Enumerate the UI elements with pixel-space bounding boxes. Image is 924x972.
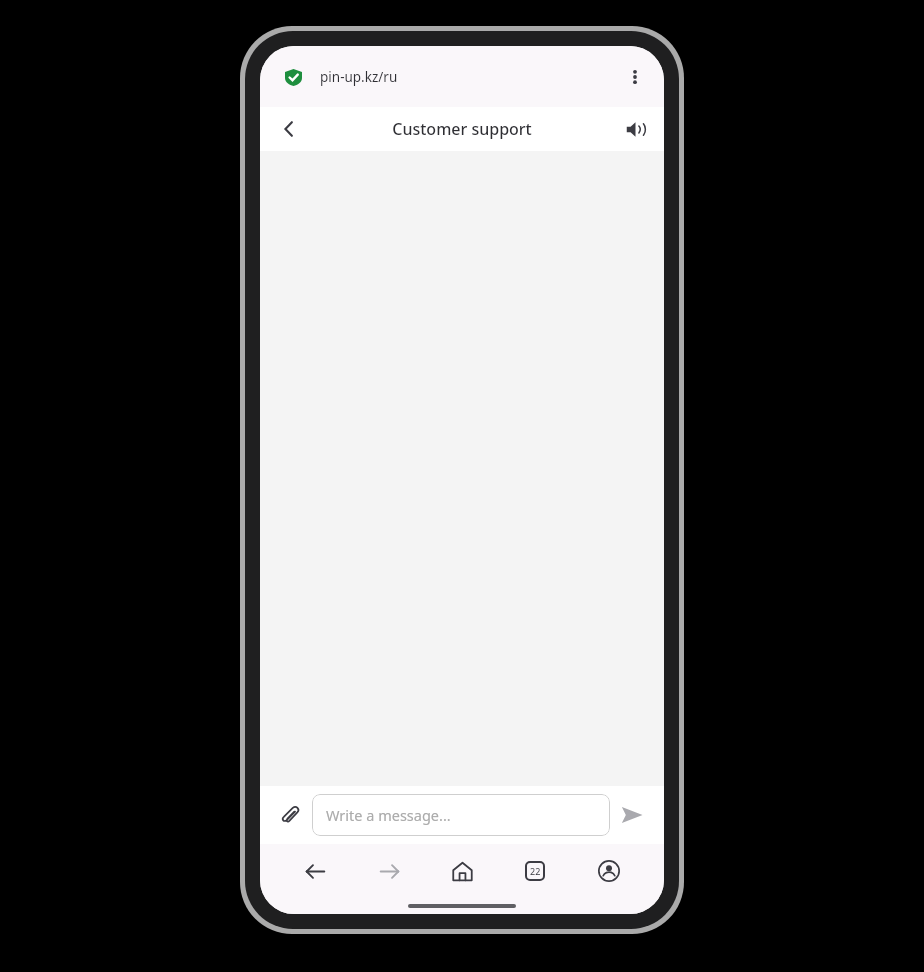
button[interactable]: More options	[618, 60, 652, 94]
staticText: Write a message...	[326, 805, 451, 825]
button[interactable]: Back	[289, 845, 341, 897]
staticText: pin-up.kz/ru	[320, 68, 398, 86]
button[interactable]: Tabs, 22 open	[509, 845, 561, 897]
staticText: 22	[530, 865, 541, 877]
button[interactable]: Account	[583, 845, 635, 897]
button[interactable]: Home	[436, 845, 488, 897]
button[interactable]: Send	[610, 793, 654, 837]
button[interactable]: Back	[270, 110, 308, 148]
button[interactable]: Attach file	[272, 797, 308, 833]
button[interactable]: Forward	[363, 845, 415, 897]
button[interactable]: Site information	[278, 62, 308, 92]
staticText: Customer support	[308, 118, 616, 140]
button[interactable]: Write a message...	[312, 794, 610, 836]
button[interactable]: Sound	[616, 110, 654, 148]
